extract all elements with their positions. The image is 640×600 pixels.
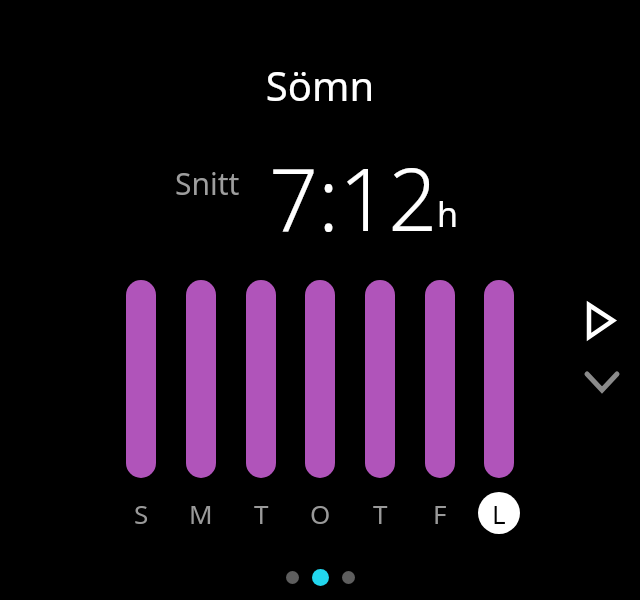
staticText: h bbox=[437, 191, 459, 237]
button[interactable] bbox=[484, 280, 514, 478]
button[interactable] bbox=[365, 280, 395, 478]
staticText: Sömn bbox=[0, 58, 640, 112]
button[interactable]: Next bbox=[578, 296, 626, 344]
button[interactable]: S bbox=[120, 492, 162, 534]
button[interactable]: T bbox=[359, 492, 401, 534]
button[interactable] bbox=[126, 280, 156, 478]
staticText: S bbox=[134, 496, 149, 531]
staticText: T bbox=[373, 496, 388, 531]
button[interactable]: T bbox=[240, 492, 282, 534]
staticText: Snitt bbox=[175, 163, 240, 204]
button[interactable]: O bbox=[299, 492, 341, 534]
staticText: F bbox=[433, 496, 447, 531]
button[interactable] bbox=[425, 280, 455, 478]
staticText: T bbox=[254, 496, 269, 531]
button[interactable]: L bbox=[478, 492, 520, 534]
staticText: O bbox=[310, 496, 331, 531]
button[interactable]: F bbox=[419, 492, 461, 534]
button[interactable] bbox=[246, 280, 276, 478]
button[interactable] bbox=[186, 280, 216, 478]
button[interactable] bbox=[305, 280, 335, 478]
staticText: L bbox=[492, 496, 506, 531]
button[interactable]: Scroll down bbox=[578, 362, 626, 410]
staticText: M bbox=[189, 496, 213, 531]
button[interactable]: M bbox=[180, 492, 222, 534]
staticText: 7:12 bbox=[269, 139, 438, 256]
